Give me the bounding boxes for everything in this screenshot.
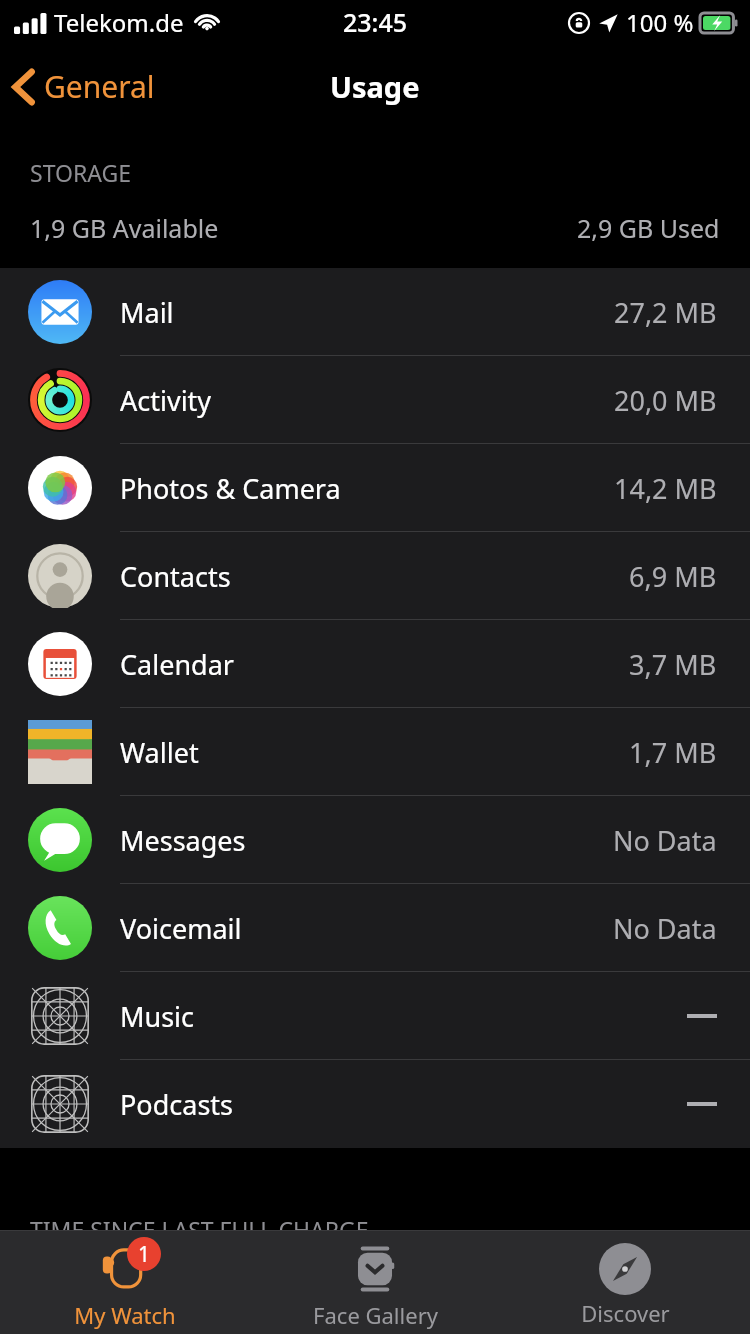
- staticText: Wallet: [120, 734, 199, 771]
- staticText: General: [44, 66, 155, 107]
- button[interactable]: Calendar: [0, 620, 750, 708]
- button[interactable]: Music: [0, 972, 750, 1060]
- button[interactable]: Voicemail: [0, 884, 750, 972]
- button[interactable]: Photos & Camera: [0, 444, 750, 532]
- staticText: 1,7 MB: [629, 734, 717, 771]
- button[interactable]: General: [0, 58, 171, 115]
- staticText: Podcasts: [120, 1086, 233, 1123]
- staticText: 14,2 MB: [614, 470, 717, 507]
- button[interactable]: Podcasts: [0, 1060, 750, 1148]
- staticText: STORAGE: [30, 157, 131, 188]
- staticText: Music: [120, 998, 195, 1035]
- staticText: Face Gallery: [313, 1300, 438, 1330]
- button[interactable]: Discover: [500, 1231, 750, 1334]
- button[interactable]: Activity: [0, 356, 750, 444]
- button[interactable]: 1: [0, 1231, 250, 1334]
- button[interactable]: Contacts: [0, 532, 750, 620]
- staticText: Contacts: [120, 558, 231, 595]
- staticText: 3,7 MB: [629, 646, 717, 683]
- staticText: 6,9 MB: [629, 558, 717, 595]
- button[interactable]: Wallet: [0, 708, 750, 796]
- staticText: 2,9 GB Used: [577, 211, 720, 245]
- staticText: TIME SINCE LAST FULL CHARGE: [30, 1214, 369, 1245]
- button[interactable]: Mail: [0, 268, 750, 356]
- staticText: Messages: [120, 822, 246, 859]
- staticText: No Data: [613, 822, 717, 859]
- staticText: 1: [138, 1240, 151, 1269]
- staticText: No Data: [613, 910, 717, 947]
- staticText: 27,2 MB: [614, 294, 717, 331]
- staticText: Activity: [120, 382, 212, 419]
- staticText: Photos & Camera: [120, 470, 341, 507]
- staticText: Discover: [581, 1298, 670, 1328]
- staticText: 20,0 MB: [614, 382, 717, 419]
- button[interactable]: Face Gallery: [250, 1231, 500, 1334]
- staticText: Usage: [330, 67, 420, 106]
- staticText: 23:45: [343, 5, 408, 39]
- staticText: Calendar: [120, 646, 234, 683]
- staticText: 1,9 GB Available: [30, 211, 219, 245]
- staticText: Voicemail: [120, 910, 242, 947]
- staticText: My Watch: [74, 1300, 176, 1330]
- staticText: Telekom.de: [54, 6, 184, 39]
- staticText: 100 %: [626, 6, 694, 39]
- button[interactable]: Messages: [0, 796, 750, 884]
- staticText: Mail: [120, 294, 174, 331]
